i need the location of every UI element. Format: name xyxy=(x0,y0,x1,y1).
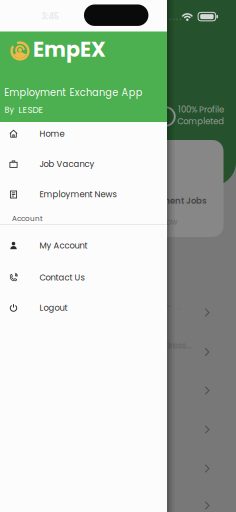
staticText: By xyxy=(4,104,14,116)
staticText: LESDE xyxy=(18,104,43,116)
button[interactable]: Employment News xyxy=(0,179,167,209)
staticText: Completed xyxy=(177,115,224,127)
staticText: EmpEX xyxy=(33,35,106,64)
staticText: 100% Profile xyxy=(178,104,224,115)
button[interactable]: Logout xyxy=(0,293,167,323)
button[interactable]: Contact Us xyxy=(0,262,167,293)
button[interactable]: VIEW NOW xyxy=(142,218,178,227)
staticText: Employment Exchange App xyxy=(4,86,143,99)
staticText: Address... xyxy=(155,340,192,351)
staticText: Account xyxy=(12,214,43,224)
staticText: Contact Us xyxy=(40,272,85,283)
staticText: Employment News xyxy=(40,188,117,200)
button[interactable]: My Account xyxy=(0,230,167,261)
staticText: Job Vacancy xyxy=(40,158,95,170)
button[interactable]: Job Vacancy xyxy=(0,149,167,179)
button[interactable]: Home xyxy=(0,118,167,149)
staticText: Government Jobs xyxy=(130,195,207,207)
staticText: My Account xyxy=(40,240,88,251)
staticText: VIEW NOW xyxy=(142,218,178,227)
staticText: Logout xyxy=(40,302,68,314)
staticText: Home xyxy=(40,128,65,140)
staticText: 3:45 xyxy=(41,11,58,22)
